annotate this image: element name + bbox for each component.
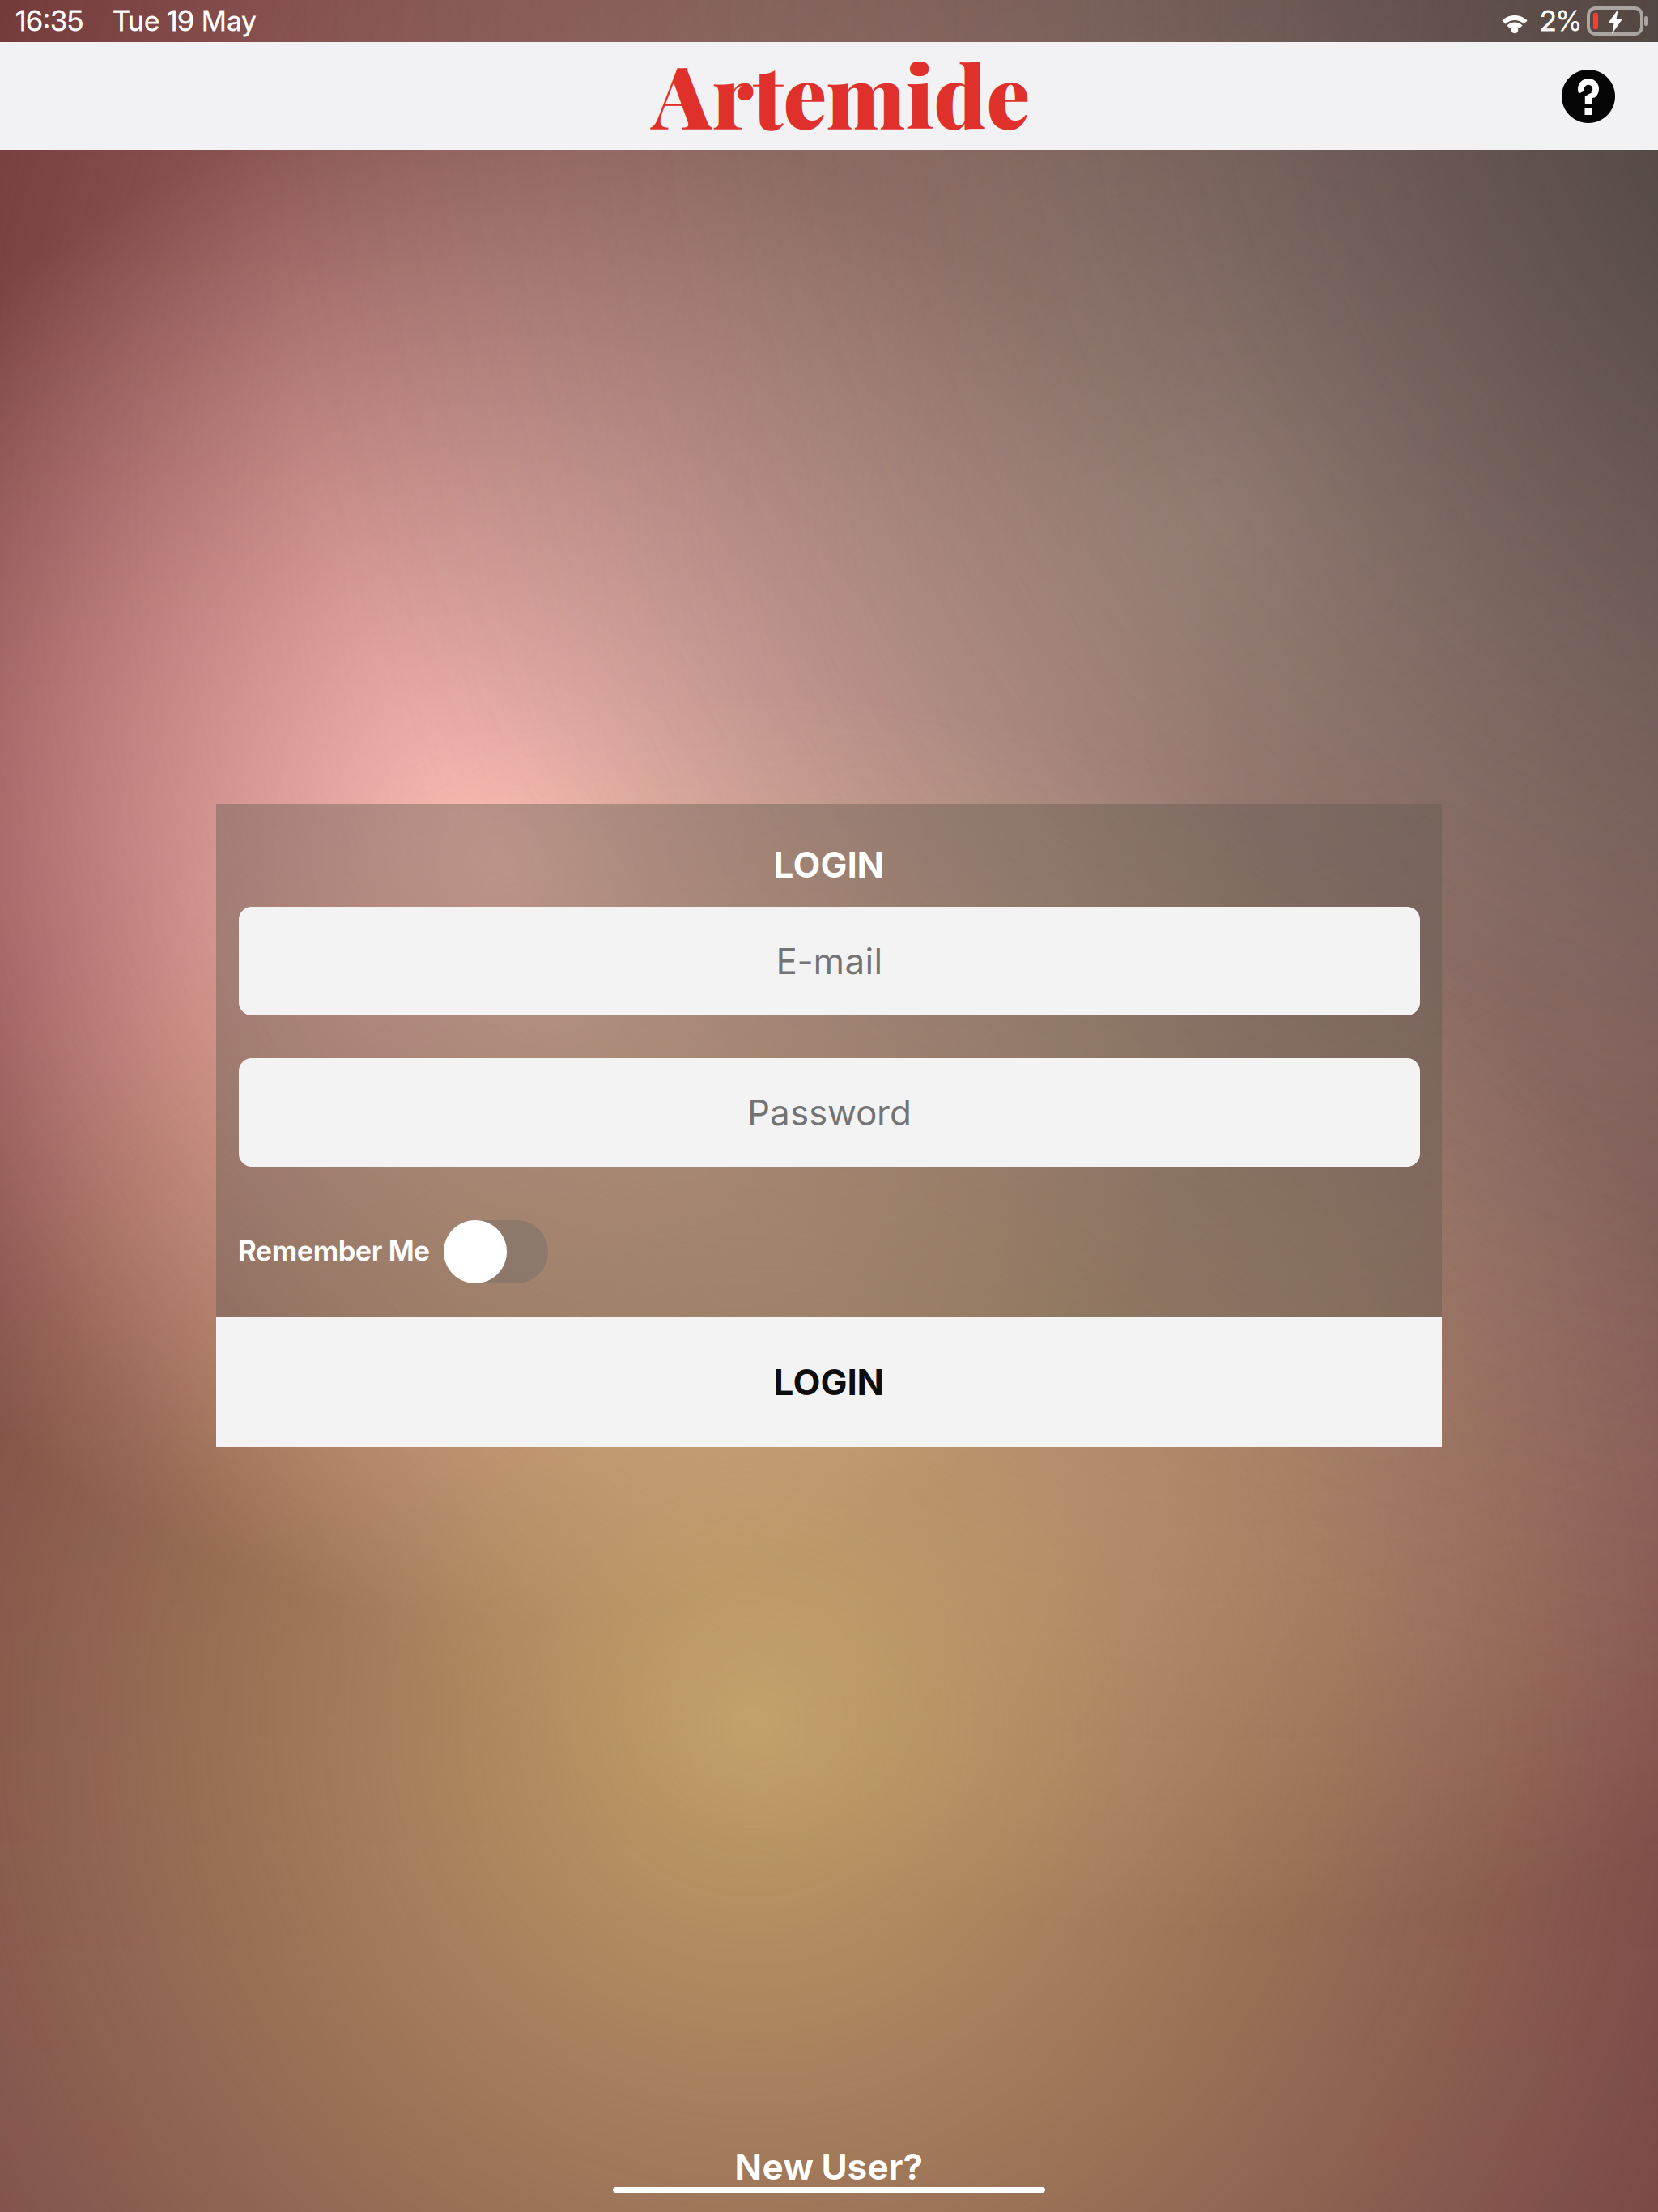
button[interactable]: Password	[239, 1058, 1420, 1167]
staticText: 16:35	[15, 4, 83, 38]
button[interactable]: Remember Me toggle	[444, 1220, 548, 1283]
button[interactable]: E-mail	[239, 907, 1420, 1015]
staticText: Tue 19 May	[113, 4, 257, 38]
staticText: Remember Me	[238, 1234, 430, 1268]
button[interactable]: New User?	[602, 2148, 1056, 2193]
button[interactable]: LOGIN	[216, 1317, 1442, 1447]
staticText: New User?	[735, 2145, 923, 2188]
staticText: E-mail	[776, 940, 883, 983]
staticText: Password	[747, 1091, 912, 1134]
staticText: LOGIN	[774, 1361, 884, 1404]
staticText: Artemide	[652, 36, 1030, 151]
staticText: LOGIN	[774, 843, 884, 886]
button[interactable]: Help	[1544, 52, 1633, 141]
staticText: 2%	[1540, 4, 1582, 38]
